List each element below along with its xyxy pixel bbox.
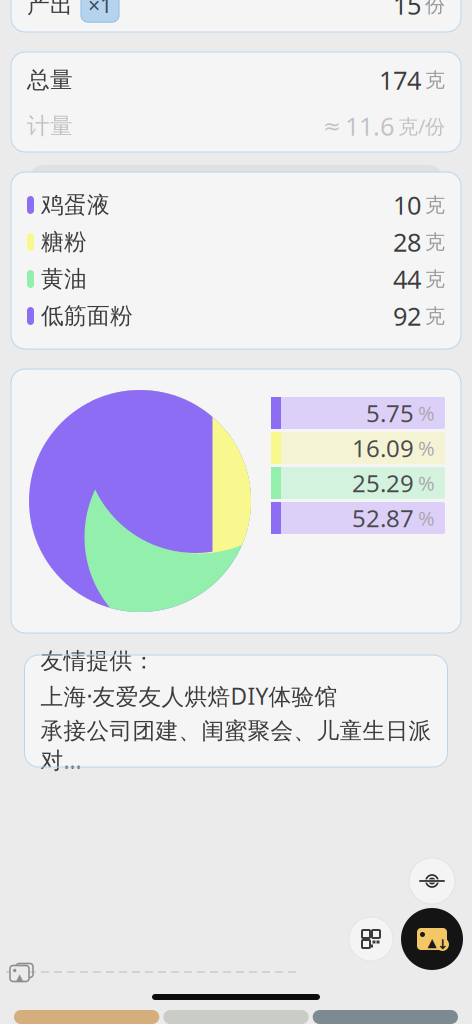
staticText: 10 bbox=[393, 188, 421, 222]
button[interactable]: QR code bbox=[349, 917, 393, 961]
staticText: 174 bbox=[379, 63, 421, 97]
staticText: 5.75 bbox=[366, 397, 414, 429]
staticText: 克 bbox=[425, 304, 445, 328]
staticText: ≈ bbox=[323, 114, 341, 138]
staticText: % bbox=[418, 400, 435, 426]
staticText: % bbox=[418, 435, 435, 461]
staticText: 糖粉 bbox=[41, 228, 87, 256]
staticText: 28 bbox=[393, 225, 421, 259]
staticText: 份 bbox=[425, 0, 445, 17]
staticText: % bbox=[418, 470, 435, 496]
staticText: 92 bbox=[393, 299, 421, 333]
staticText: 15 bbox=[393, 0, 421, 22]
staticText: 克 bbox=[425, 230, 445, 254]
staticText: 克 bbox=[425, 193, 445, 217]
staticText: 低筋面粉 bbox=[41, 302, 133, 330]
staticText: ▲ bbox=[16, 972, 23, 982]
staticText: 鸡蛋液 bbox=[41, 191, 110, 219]
staticText: 11.6 bbox=[345, 109, 394, 143]
staticText: 计量 bbox=[27, 112, 73, 140]
staticText: 25.29 bbox=[352, 467, 414, 499]
button[interactable]: Save image bbox=[401, 908, 463, 970]
staticText: 友情提供： bbox=[40, 647, 155, 675]
staticText: 克 bbox=[425, 267, 445, 291]
button[interactable]: Hide bbox=[409, 858, 455, 904]
staticText: % bbox=[418, 505, 435, 531]
staticText: 上海·友爱友人烘焙DIY体验馆 bbox=[40, 681, 337, 711]
staticText: 16.09 bbox=[352, 432, 414, 464]
staticText: ▲ bbox=[427, 936, 436, 949]
staticText: 黄油 bbox=[41, 265, 87, 293]
staticText: ↓ bbox=[437, 937, 448, 952]
staticText: 总量 bbox=[27, 66, 73, 94]
staticText: 克/份 bbox=[398, 113, 445, 139]
staticText: 44 bbox=[393, 262, 421, 296]
staticText: 产出 bbox=[27, 0, 73, 19]
staticText: 承接公司团建、闺蜜聚会、儿童生日派对... bbox=[40, 717, 431, 775]
staticText: 52.87 bbox=[352, 502, 414, 534]
staticText: ×1 bbox=[88, 0, 112, 19]
staticText: 克 bbox=[425, 68, 445, 92]
